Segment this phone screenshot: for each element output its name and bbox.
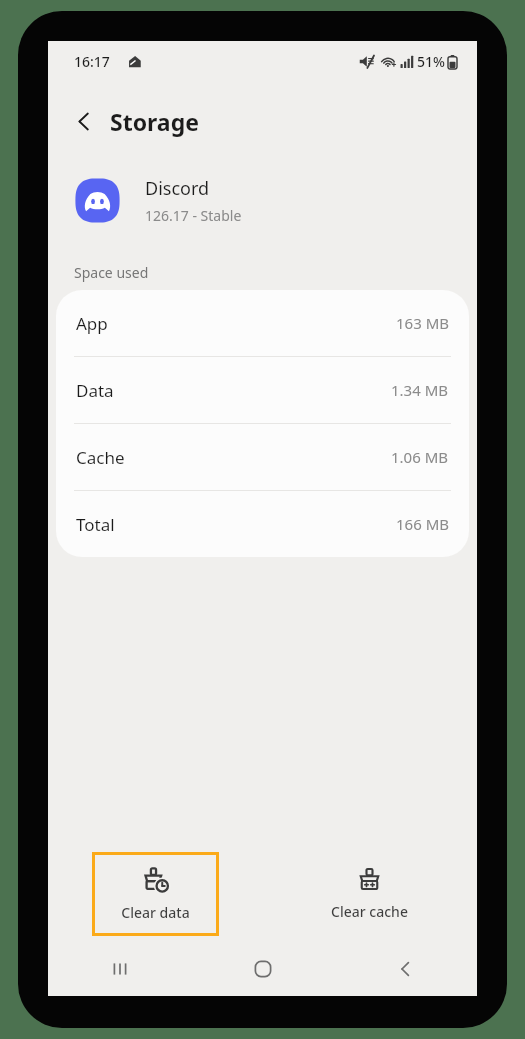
staticText: Total bbox=[76, 513, 115, 536]
staticText: App bbox=[76, 312, 108, 335]
staticText: Discord bbox=[145, 176, 210, 201]
staticText: Data bbox=[76, 379, 114, 402]
button[interactable]: Back bbox=[62, 99, 106, 143]
button[interactable]: Clear data bbox=[92, 852, 219, 936]
staticText: Clear cache bbox=[331, 902, 408, 921]
button[interactable]: Total bbox=[56, 491, 469, 557]
button[interactable]: Recent apps bbox=[48, 942, 191, 996]
staticText: 1.34 MB bbox=[391, 380, 449, 400]
button[interactable]: Data bbox=[56, 357, 469, 423]
staticText: 51% bbox=[417, 52, 445, 71]
button[interactable]: Clear cache bbox=[306, 852, 433, 936]
staticText: 16:17 bbox=[74, 52, 110, 71]
staticText: 163 MB bbox=[396, 313, 449, 333]
staticText: Space used bbox=[74, 263, 149, 282]
button[interactable]: Home bbox=[191, 942, 334, 996]
staticText: 166 MB bbox=[396, 514, 449, 534]
staticText: Cache bbox=[76, 446, 125, 469]
button[interactable]: Back bbox=[334, 942, 477, 996]
staticText: 126.17 - Stable bbox=[145, 206, 242, 225]
button[interactable]: Cache bbox=[56, 424, 469, 490]
staticText: 1.06 MB bbox=[391, 447, 449, 467]
staticText: Storage bbox=[110, 106, 199, 137]
button[interactable]: App bbox=[56, 290, 469, 356]
staticText: Clear data bbox=[121, 903, 190, 922]
